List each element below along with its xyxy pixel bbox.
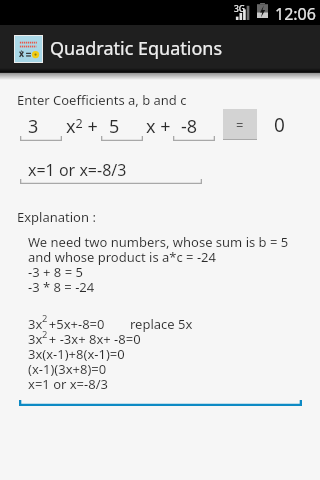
staticText: 2 [42,312,48,325]
staticText: 5 [109,114,120,139]
staticText: Explanation : [17,208,96,226]
staticText: 0 [274,112,285,138]
staticText: 3x +5x+-8=0 3x + -3x+ 8x+ -8=0 3x(x-1)+8… [28,315,141,393]
staticText: x2 + [66,114,98,139]
other: App icon [15,36,42,62]
other: Battery charging [257,3,268,18]
staticText: = [236,116,244,134]
button[interactable]: 5 [101,112,143,140]
button[interactable]: -8 [173,112,215,140]
button[interactable]: = [223,109,257,140]
staticText: 3 [28,114,39,139]
staticText: replace 5x [130,315,193,333]
staticText: Quadratic Equations [50,36,223,61]
staticText: 2 [42,328,48,341]
staticText: -8 [181,114,198,139]
staticText: Enter Coefficients a, b and c [17,91,187,109]
staticText: 3G [234,3,246,15]
staticText: We need two numbers, whose sum is b = 5 … [28,233,289,296]
other: 3G signal strength [233,3,251,20]
staticText: x + [146,114,171,139]
staticText: 12:06 [275,3,316,25]
button[interactable]: 3 [20,112,62,140]
staticText: x=1 or x=-8/3 [28,159,127,181]
